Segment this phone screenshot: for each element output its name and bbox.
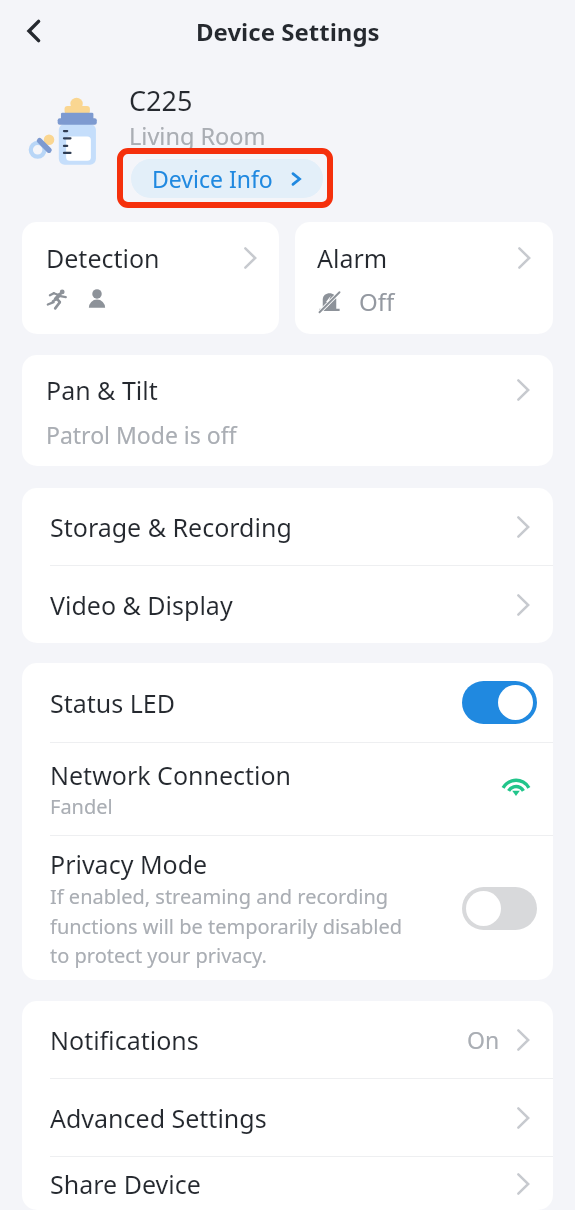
button[interactable]: Notifications bbox=[22, 1001, 553, 1078]
button[interactable]: Network Connection bbox=[22, 743, 553, 835]
staticText: Device Settings bbox=[196, 15, 380, 48]
button[interactable]: Storage & Recording bbox=[22, 488, 553, 565]
staticText: Detection bbox=[46, 241, 160, 275]
staticText: Status LED bbox=[50, 686, 175, 720]
staticText: Video & Display bbox=[50, 588, 233, 622]
staticText: Advanced Settings bbox=[50, 1101, 267, 1135]
staticText: Alarm bbox=[317, 241, 388, 275]
button[interactable]: Share Device bbox=[22, 1157, 553, 1210]
staticText: Off bbox=[359, 285, 395, 318]
button[interactable]: Back bbox=[10, 6, 60, 56]
button[interactable]: Privacy Mode bbox=[22, 836, 553, 980]
button[interactable]: Device Info bbox=[131, 159, 323, 198]
staticText: Privacy Mode bbox=[50, 847, 208, 881]
button[interactable]: Detection bbox=[22, 222, 279, 334]
staticText: Patrol Mode is off bbox=[46, 419, 237, 450]
button[interactable]: Alarm bbox=[295, 222, 553, 334]
staticText: Storage & Recording bbox=[50, 510, 292, 544]
staticText: If enabled, streaming and recording func… bbox=[50, 883, 408, 969]
button[interactable]: Pan & Tilt bbox=[22, 355, 553, 466]
staticText: Share Device bbox=[50, 1167, 201, 1201]
staticText: C225 bbox=[129, 82, 193, 119]
staticText: Fandel bbox=[50, 793, 113, 820]
button[interactable]: Video & Display bbox=[22, 566, 553, 643]
staticText: Pan & Tilt bbox=[46, 373, 158, 407]
staticText: Notifications bbox=[50, 1023, 199, 1057]
staticText: Device Info bbox=[152, 163, 273, 194]
button[interactable]: Turn on bbox=[462, 887, 537, 930]
staticText: Network Connection bbox=[50, 758, 292, 792]
button[interactable]: Advanced Settings bbox=[22, 1079, 553, 1156]
button[interactable]: Status LED bbox=[22, 663, 553, 742]
staticText: On bbox=[467, 1024, 500, 1055]
staticText: Living Room bbox=[129, 120, 266, 152]
button[interactable]: Turn off bbox=[462, 681, 537, 724]
